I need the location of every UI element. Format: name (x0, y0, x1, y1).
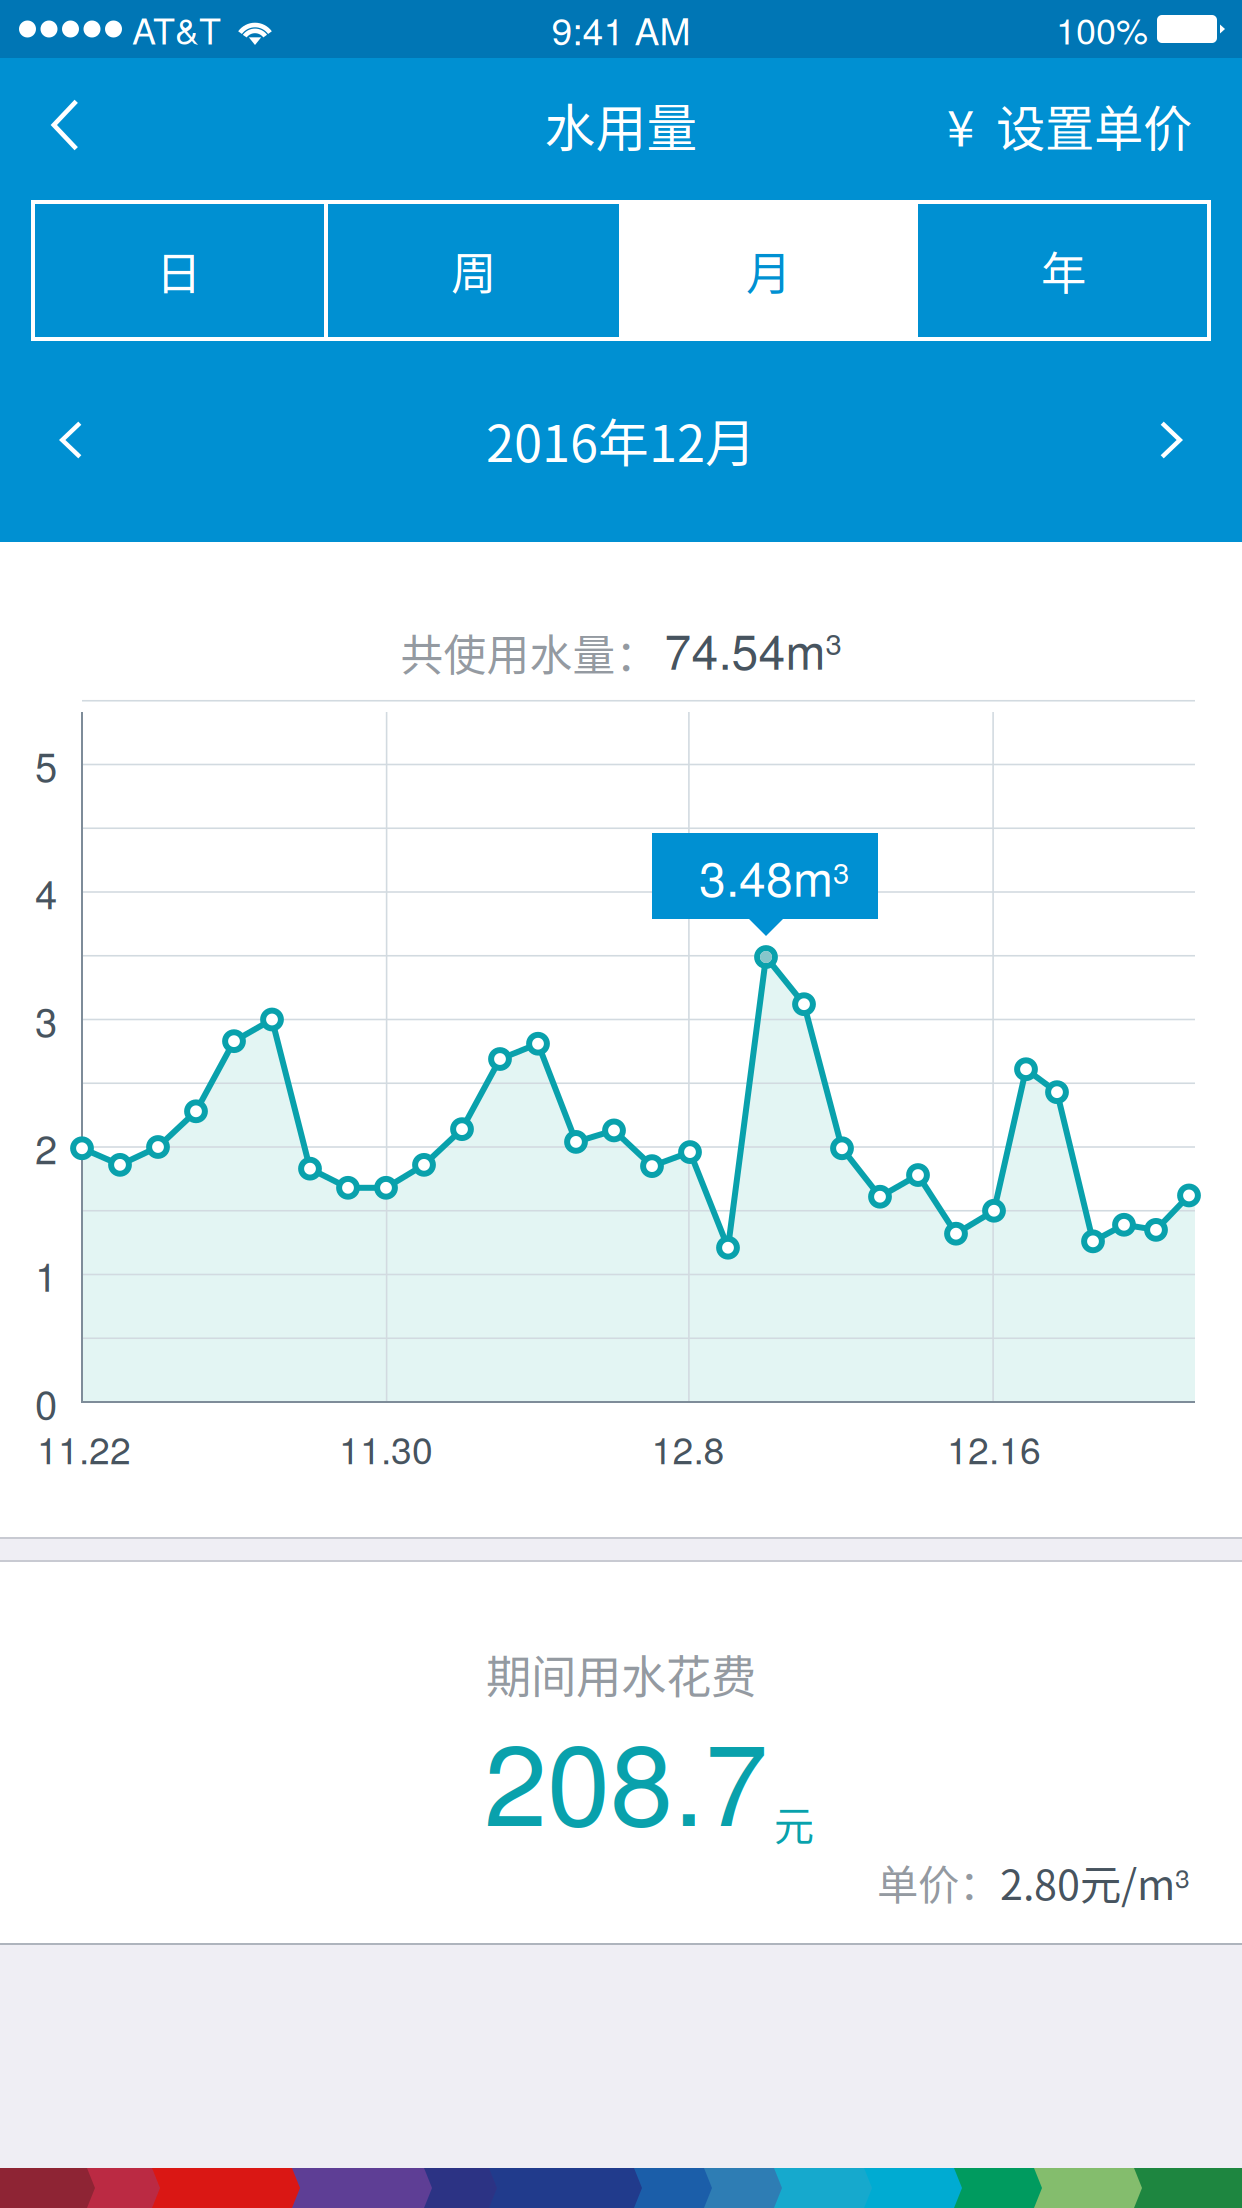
staticText: 3 (35, 991, 57, 1048)
staticText: 12.16 (947, 1421, 1041, 1475)
staticText: 周 (451, 238, 496, 303)
staticText: 3 (1175, 1858, 1190, 1896)
staticText: 期间用水花费 (486, 1641, 756, 1707)
staticText: 4 (35, 863, 57, 921)
button[interactable]: 日 (31, 200, 326, 341)
staticText: ¥ (947, 89, 974, 161)
staticText: 9:41 AM (551, 2, 690, 56)
staticText: 3 (825, 621, 841, 663)
staticText: 0 (35, 1373, 57, 1431)
button[interactable]: 周 (326, 200, 621, 341)
staticText: 月 (746, 238, 791, 303)
staticText: 3.48m (699, 842, 833, 910)
staticText: 100% (1056, 3, 1148, 55)
staticText: AT&T (132, 3, 221, 55)
staticText: 11.30 (339, 1421, 433, 1475)
staticText: 2016年12月 (486, 403, 756, 477)
staticText: 11.22 (37, 1421, 131, 1475)
button[interactable]: Previous month (0, 370, 142, 510)
button[interactable]: 月 (621, 200, 916, 341)
staticText: 74.54m (664, 615, 825, 683)
staticText: 单价： (877, 1852, 1000, 1912)
staticText: 日 (156, 238, 201, 303)
staticText: 2 (35, 1118, 57, 1176)
staticText: 5 (35, 736, 57, 793)
button[interactable]: Back (0, 58, 130, 192)
staticText: 水用量 (544, 88, 697, 162)
staticText: 年 (1041, 238, 1086, 303)
staticText: 1 (35, 1246, 57, 1303)
staticText: 设置单价 (996, 89, 1192, 161)
button[interactable]: Next month (1100, 370, 1242, 510)
staticText: 2.80元/m (1000, 1852, 1175, 1912)
button[interactable]: ¥ (921, 58, 1242, 192)
staticText: 12.8 (651, 1421, 724, 1475)
staticText: 3 (833, 850, 849, 892)
button[interactable]: 年 (916, 200, 1211, 341)
staticText: 元 (774, 1794, 814, 1852)
staticText: 共使用水量： (400, 622, 658, 683)
staticText: 208.7 (484, 1696, 768, 1858)
